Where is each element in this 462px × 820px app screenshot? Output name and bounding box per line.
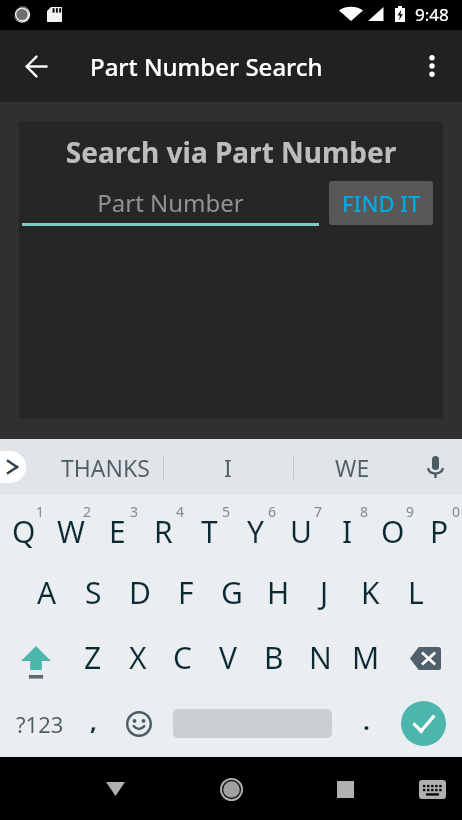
button[interactable]: Z: [70, 625, 115, 690]
staticText: D: [129, 572, 151, 613]
button[interactable]: ?123: [12, 690, 68, 757]
button[interactable]: K: [347, 560, 393, 625]
staticText: I: [342, 511, 353, 552]
staticText: W: [57, 511, 85, 552]
staticText: Y: [247, 511, 264, 552]
staticText: 0: [452, 502, 461, 521]
button[interactable]: THANKS: [36, 439, 174, 495]
button[interactable]: J: [301, 560, 347, 625]
button[interactable]: FIND IT: [329, 181, 433, 225]
staticText: 4: [176, 502, 185, 521]
staticText: 9:48: [415, 3, 449, 26]
button[interactable]: WE: [300, 439, 404, 495]
button[interactable]: G: [209, 560, 255, 625]
staticText: U: [290, 511, 312, 552]
staticText: 6: [268, 502, 277, 521]
staticText: B: [264, 637, 284, 678]
button[interactable]: Expand suggestions: [0, 451, 26, 483]
button[interactable]: Q: [0, 495, 47, 560]
button[interactable]: .: [344, 690, 388, 757]
button[interactable]: Back: [87, 761, 143, 817]
staticText: R: [154, 511, 173, 552]
button[interactable]: E: [94, 495, 140, 560]
button[interactable]: S: [70, 560, 117, 625]
button[interactable]: C: [160, 625, 205, 690]
staticText: ?123: [16, 709, 64, 739]
button[interactable]: D: [117, 560, 163, 625]
staticText: S: [85, 572, 102, 613]
staticText: 8: [360, 502, 369, 521]
button[interactable]: Space: [160, 690, 344, 757]
staticText: T: [201, 511, 218, 552]
button[interactable]: Keyboard: [404, 761, 460, 817]
button[interactable]: A: [23, 560, 70, 625]
staticText: X: [129, 637, 147, 678]
staticText: I: [224, 452, 232, 483]
button[interactable]: T: [186, 495, 232, 560]
button[interactable]: U: [278, 495, 324, 560]
button[interactable]: Voice input: [411, 439, 459, 495]
button[interactable]: F: [163, 560, 209, 625]
button[interactable]: Emoji: [116, 690, 162, 757]
staticText: V: [219, 637, 237, 678]
staticText: P: [430, 511, 449, 552]
staticText: M: [352, 637, 380, 678]
staticText: WE: [335, 452, 370, 483]
staticText: 1: [36, 502, 45, 521]
button[interactable]: N: [297, 625, 343, 690]
staticText: Part Number Search: [90, 50, 323, 83]
staticText: L: [408, 572, 424, 613]
button[interactable]: ,: [70, 690, 116, 757]
staticText: 5: [222, 502, 231, 521]
staticText: 7: [314, 502, 323, 521]
button[interactable]: More options: [404, 38, 460, 94]
button[interactable]: H: [255, 560, 301, 625]
button[interactable]: Backspace: [389, 625, 462, 690]
button[interactable]: Back: [8, 38, 64, 94]
staticText: 2: [83, 502, 92, 521]
staticText: E: [109, 511, 126, 552]
staticText: N: [309, 637, 332, 678]
button[interactable]: I: [175, 439, 281, 495]
button[interactable]: V: [205, 625, 251, 690]
staticText: Part Number: [22, 186, 319, 219]
staticText: THANKS: [61, 452, 150, 483]
staticText: C: [173, 637, 192, 678]
button[interactable]: Home: [203, 761, 259, 817]
staticText: O: [381, 511, 405, 552]
button[interactable]: X: [115, 625, 160, 690]
button[interactable]: I: [324, 495, 370, 560]
staticText: Q: [12, 511, 36, 552]
button[interactable]: W: [47, 495, 94, 560]
button[interactable]: M: [343, 625, 389, 690]
button[interactable]: Enter: [390, 690, 457, 757]
button[interactable]: P: [416, 495, 462, 560]
staticText: FIND IT: [342, 188, 421, 218]
button[interactable]: B: [251, 625, 297, 690]
staticText: F: [178, 572, 194, 613]
button[interactable]: R: [140, 495, 186, 560]
staticText: K: [361, 572, 380, 613]
staticText: .: [363, 704, 370, 737]
button[interactable]: O: [370, 495, 416, 560]
button[interactable]: L: [393, 560, 439, 625]
button[interactable]: Recents: [317, 761, 373, 817]
button[interactable]: Shift: [0, 625, 70, 690]
staticText: J: [320, 572, 329, 613]
staticText: ,: [90, 704, 97, 737]
button[interactable]: Y: [232, 495, 278, 560]
staticText: 3: [130, 502, 139, 521]
staticText: Search via Part Number: [19, 133, 443, 171]
staticText: H: [267, 572, 290, 613]
staticText: G: [221, 572, 243, 613]
staticText: 9: [406, 502, 415, 521]
staticText: Z: [84, 637, 102, 678]
staticText: A: [37, 572, 57, 613]
